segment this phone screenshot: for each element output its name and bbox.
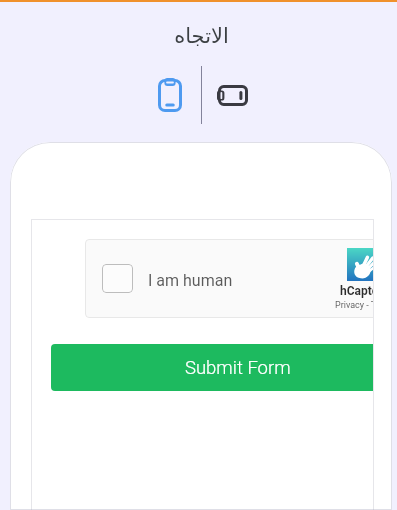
staticText: hCaptcha: [340, 284, 374, 298]
staticText: Privacy - Terms: [335, 300, 374, 311]
button[interactable]: Submit Form: [51, 344, 374, 391]
staticText: Submit Form: [185, 357, 291, 379]
button[interactable]: I am human: [85, 239, 374, 318]
button[interactable]: Landscape orientation: [207, 66, 259, 124]
staticText: I am human: [148, 271, 233, 290]
staticText: الاتجاه: [174, 24, 229, 48]
button[interactable]: Portrait orientation: [144, 66, 196, 124]
